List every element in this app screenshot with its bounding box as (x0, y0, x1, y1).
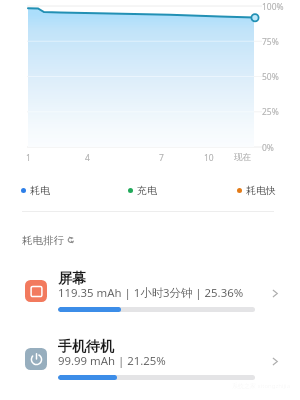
button[interactable]: 屏幕 (0, 262, 300, 328)
staticText: 1 (26, 152, 31, 164)
staticText: 耗电 (30, 184, 50, 196)
staticText: 手机待机 (58, 338, 114, 356)
staticText: 10 (204, 152, 214, 164)
staticText: 99.99 mAh | 21.25% (58, 353, 166, 369)
staticText: 耗电快 (246, 184, 276, 196)
staticText: 充电 (137, 184, 157, 196)
staticText: 现在 (234, 152, 251, 163)
staticText: 119.35 mAh | 1小时3分钟 | 25.36% (58, 285, 244, 301)
staticText: 75% (262, 36, 279, 48)
staticText: 耗电排行 (22, 234, 64, 247)
staticText: 7 (159, 152, 164, 164)
button[interactable]: 耗电排行 (22, 232, 75, 248)
other: Details (271, 357, 280, 366)
button[interactable]: 耗电快 (237, 184, 276, 196)
staticText: 0% (262, 142, 274, 154)
staticText: 25% (262, 106, 279, 118)
other: Details (271, 289, 280, 298)
button[interactable]: 耗电 (21, 184, 50, 196)
staticText: 50% (262, 71, 279, 83)
button[interactable]: 充电 (128, 184, 157, 196)
staticText: 100% (262, 1, 284, 13)
button[interactable]: 手机待机 (0, 330, 300, 396)
staticText: 屏幕 (58, 270, 86, 288)
staticText: 4 (85, 152, 90, 164)
